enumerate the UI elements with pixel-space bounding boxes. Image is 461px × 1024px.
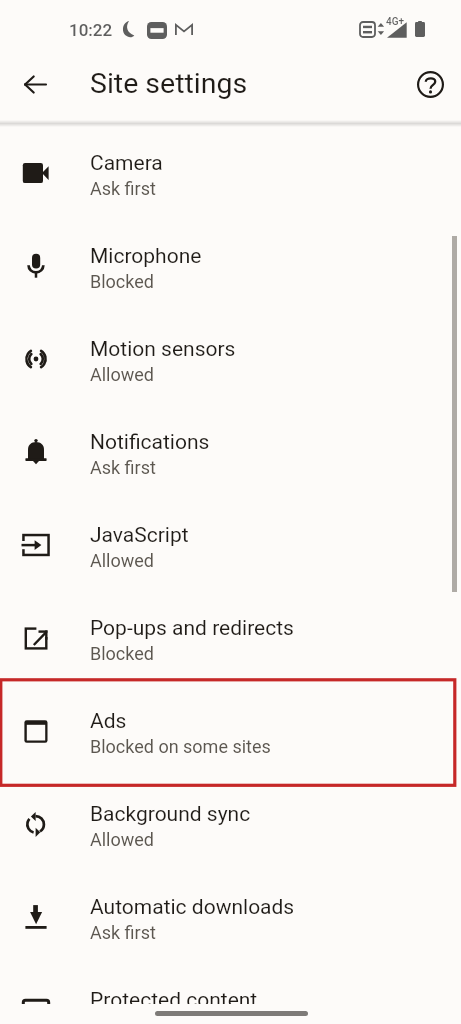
staticText: Protected content bbox=[90, 988, 258, 1004]
staticText: Background sync bbox=[90, 802, 251, 827]
staticText: Ask first bbox=[90, 178, 156, 199]
staticText: Camera bbox=[90, 151, 163, 176]
button[interactable]: Microphone bbox=[0, 222, 461, 315]
button[interactable]: Protected content bbox=[0, 966, 461, 1004]
staticText: 4G+ bbox=[386, 16, 405, 28]
button[interactable]: Help bbox=[406, 60, 454, 108]
staticText: Blocked bbox=[90, 271, 154, 292]
staticText: Pop-ups and redirects bbox=[90, 616, 294, 641]
button[interactable]: Notifications bbox=[0, 408, 461, 501]
button[interactable]: JavaScript bbox=[0, 501, 461, 594]
staticText: Notifications bbox=[90, 430, 210, 455]
staticText: Microphone bbox=[90, 244, 202, 269]
staticText: Ask first bbox=[90, 922, 156, 943]
button[interactable]: Ads bbox=[0, 687, 461, 780]
staticText: Site settings bbox=[90, 67, 248, 100]
staticText: 10:22 bbox=[69, 20, 113, 40]
staticText: Ask first bbox=[90, 457, 156, 478]
staticText: Allowed bbox=[90, 550, 154, 571]
staticText: Ads bbox=[90, 709, 127, 734]
staticText: Allowed bbox=[90, 364, 154, 385]
staticText: Automatic downloads bbox=[90, 895, 295, 920]
staticText: JavaScript bbox=[90, 523, 189, 548]
button[interactable]: Background sync bbox=[0, 780, 461, 873]
button[interactable]: Pop-ups and redirects bbox=[0, 594, 461, 687]
button[interactable]: Back bbox=[11, 60, 59, 108]
staticText: Motion sensors bbox=[90, 337, 236, 362]
staticText: Allowed bbox=[90, 829, 154, 850]
staticText: Blocked on some sites bbox=[90, 736, 271, 757]
button[interactable]: Automatic downloads bbox=[0, 873, 461, 966]
button[interactable]: Motion sensors bbox=[0, 315, 461, 408]
button[interactable]: Camera bbox=[0, 129, 461, 222]
staticText: Blocked bbox=[90, 643, 154, 664]
